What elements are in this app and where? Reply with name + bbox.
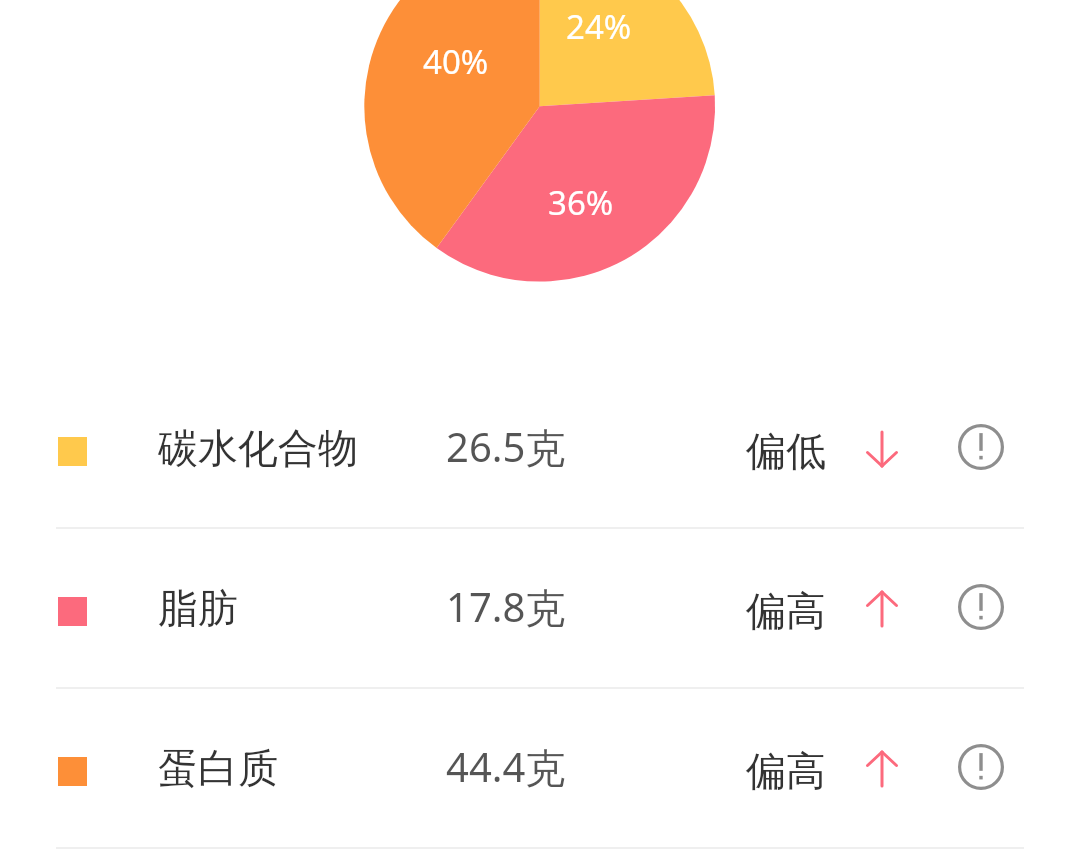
button[interactable]: 碳水化合物 [0, 367, 1080, 527]
staticText: 脂肪 [158, 583, 238, 633]
button[interactable]: Above target [860, 745, 904, 789]
button[interactable]: Above target [860, 585, 904, 629]
staticText: 偏高 [746, 586, 826, 636]
button[interactable]: Below target [860, 425, 904, 469]
button[interactable]: More information [958, 584, 1004, 630]
staticText: 碳水化合物 [158, 423, 358, 473]
button[interactable]: 蛋白质 [0, 687, 1080, 847]
button[interactable]: More information [958, 744, 1004, 790]
staticText: 44.4克 [446, 739, 566, 794]
staticText: 24% [566, 4, 632, 49]
staticText: 偏高 [746, 746, 826, 796]
staticText: 蛋白质 [158, 743, 278, 793]
staticText: 偏低 [746, 426, 826, 476]
button[interactable]: 脂肪 [0, 527, 1080, 687]
button[interactable]: More information [958, 424, 1004, 470]
staticText: 40% [423, 39, 489, 84]
staticText: 17.8克 [446, 579, 566, 634]
staticText: 36% [548, 180, 614, 225]
staticText: 26.5克 [446, 419, 566, 474]
